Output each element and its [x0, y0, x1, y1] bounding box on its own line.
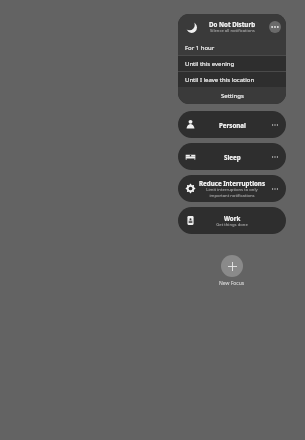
- staticText: Do Not Disturb: [209, 20, 256, 28]
- button[interactable]: Until this evening: [178, 56, 286, 71]
- button[interactable]: Personal options: [270, 120, 280, 130]
- staticText: Silence all notifications: [210, 28, 255, 34]
- staticText: Until this evening: [185, 60, 235, 68]
- staticText: Limit interruptions to only important no…: [206, 187, 258, 198]
- button[interactable]: Reduce Interruptions: [178, 175, 286, 202]
- button[interactable]: Until I leave this location: [178, 72, 286, 87]
- button[interactable]: More options: [269, 21, 281, 33]
- staticText: Personal: [219, 121, 246, 129]
- staticText: New Focus: [219, 280, 245, 287]
- staticText: Work: [224, 214, 241, 222]
- staticText: Settings: [221, 92, 244, 100]
- staticText: Get things done: [216, 222, 248, 228]
- button[interactable]: For 1 hour: [178, 40, 286, 55]
- button[interactable]: Sleep: [178, 143, 286, 170]
- staticText: Reduce Interruptions: [199, 179, 265, 187]
- staticText: Sleep: [224, 153, 241, 161]
- staticText: For 1 hour: [185, 44, 215, 52]
- button[interactable]: Reduce Interruptions options: [270, 184, 280, 194]
- button[interactable]: Settings: [178, 87, 286, 104]
- button[interactable]: Personal: [178, 111, 286, 138]
- button[interactable]: Sleep options: [270, 152, 280, 162]
- button[interactable]: Do Not Disturb: [178, 14, 286, 40]
- staticText: Until I leave this location: [185, 76, 255, 84]
- button[interactable]: New Focus: [217, 253, 247, 289]
- button[interactable]: Work: [178, 207, 286, 234]
